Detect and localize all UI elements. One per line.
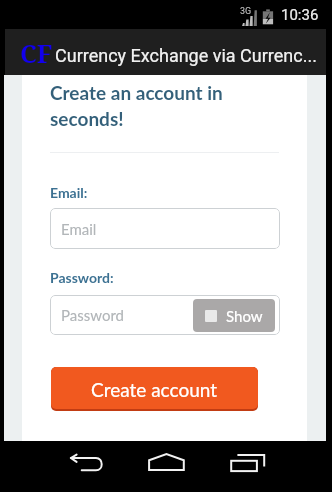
staticText: Password (61, 306, 193, 324)
staticText: Create account (91, 378, 218, 401)
staticText: 10:36 (281, 6, 319, 24)
staticText: Email (61, 220, 97, 238)
staticText: Currency Exchange via Currenc... (55, 45, 317, 66)
button[interactable]: Show (193, 299, 275, 332)
staticText: Password: (50, 269, 114, 286)
staticText: Show (226, 307, 263, 325)
staticText: 3G (240, 6, 252, 17)
staticText: CF (20, 36, 53, 70)
button[interactable]: Recent apps (224, 447, 271, 486)
staticText: Create an account in seconds! (50, 81, 250, 130)
staticText: Email: (50, 184, 88, 201)
button[interactable]: Email (50, 208, 280, 249)
button[interactable]: Home (142, 447, 191, 486)
button[interactable]: Back (62, 447, 110, 486)
button[interactable]: Create account (51, 367, 258, 411)
